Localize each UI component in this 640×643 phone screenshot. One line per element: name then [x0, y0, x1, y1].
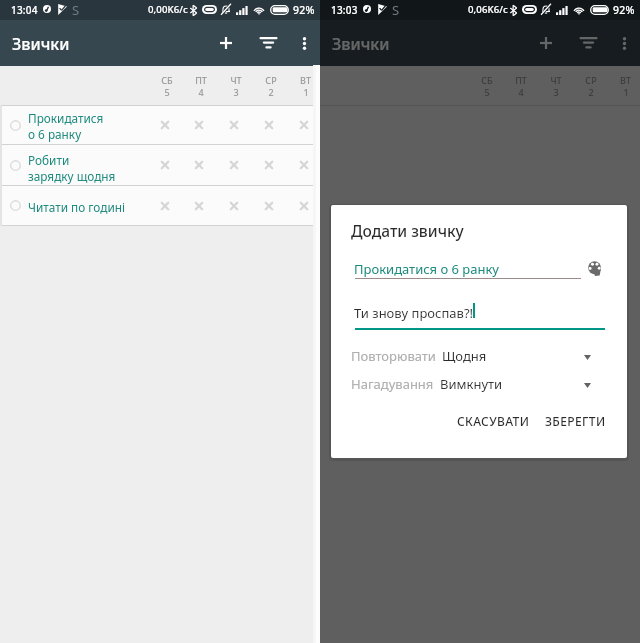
- staticText: 4: [198, 86, 204, 98]
- staticText: Нагадування: [351, 375, 434, 393]
- button[interactable]: Toggle СБ: [148, 145, 182, 185]
- button[interactable]: Toggle ЧТ: [216, 145, 251, 185]
- button[interactable]: Повторювати: [351, 344, 607, 368]
- staticText: 0,06K6/c: [468, 3, 508, 16]
- staticText: 92%: [613, 3, 635, 17]
- staticText: Додати звичку: [351, 220, 464, 241]
- staticText: СБ: [161, 74, 173, 86]
- staticText: 1: [623, 86, 629, 98]
- staticText: ЗБЕРЕГТИ: [545, 413, 606, 429]
- staticText: Ти знову проспав?!: [354, 304, 474, 322]
- staticText: Вимкнути: [440, 375, 503, 393]
- button[interactable]: Toggle СБ: [148, 106, 182, 144]
- staticText: 13:03: [331, 3, 358, 17]
- button[interactable]: More options: [287, 20, 321, 66]
- staticText: Прокидатися: [28, 110, 104, 126]
- staticText: ВТ: [620, 74, 631, 86]
- staticText: ЧТ: [230, 74, 242, 86]
- button[interactable]: Toggle ПТ: [182, 186, 216, 225]
- staticText: 92%: [293, 3, 315, 17]
- staticText: СКАСУВАТИ: [457, 413, 530, 429]
- button[interactable]: Add habit: [206, 20, 246, 66]
- staticText: ПТ: [515, 74, 527, 86]
- staticText: 5: [164, 86, 170, 98]
- staticText: Читати по годині: [28, 199, 126, 215]
- staticText: 3: [553, 86, 559, 98]
- button[interactable]: Toggle ПТ: [182, 106, 216, 144]
- staticText: 1: [303, 86, 309, 98]
- button[interactable]: Toggle ВТ: [286, 145, 321, 185]
- button[interactable]: Toggle ЧТ: [216, 186, 251, 225]
- staticText: 0,00K6/c: [148, 3, 188, 16]
- staticText: ЧТ: [550, 74, 562, 86]
- button[interactable]: Toggle ВТ: [286, 186, 321, 225]
- button[interactable]: ЗБЕРЕГТИ: [540, 406, 611, 436]
- staticText: Звички: [12, 33, 70, 55]
- button[interactable]: Toggle ПТ: [182, 145, 216, 185]
- button[interactable]: Add habit: [526, 20, 566, 66]
- button[interactable]: Toggle СР: [251, 106, 286, 144]
- staticText: 4: [518, 86, 524, 98]
- staticText: ВТ: [300, 74, 311, 86]
- button[interactable]: Filter: [248, 20, 288, 66]
- staticText: Щодня: [442, 347, 487, 365]
- staticText: СР: [265, 74, 277, 86]
- staticText: о 6 ранку: [28, 126, 82, 142]
- staticText: S: [392, 1, 400, 19]
- button[interactable]: Toggle ВТ: [286, 106, 321, 144]
- button[interactable]: Toggle ЧТ: [216, 106, 251, 144]
- staticText: 2: [588, 86, 594, 98]
- staticText: зарядку щодня: [28, 168, 116, 184]
- staticText: 2: [268, 86, 274, 98]
- staticText: Звички: [332, 33, 390, 55]
- staticText: 13:04: [11, 3, 38, 17]
- staticText: Робити: [28, 152, 70, 168]
- staticText: ПТ: [195, 74, 207, 86]
- button[interactable]: Toggle СР: [251, 186, 286, 225]
- button[interactable]: More options: [607, 20, 640, 66]
- staticText: 3: [233, 86, 239, 98]
- staticText: Прокидатися о 6 ранку: [354, 260, 499, 278]
- button[interactable]: Filter: [568, 20, 608, 66]
- button[interactable]: Toggle СР: [251, 145, 286, 185]
- button[interactable]: СКАСУВАТИ: [451, 406, 535, 436]
- staticText: S: [72, 1, 80, 19]
- button[interactable]: Choose colour: [582, 255, 608, 281]
- staticText: СР: [585, 74, 597, 86]
- staticText: 5: [484, 86, 490, 98]
- staticText: СБ: [481, 74, 493, 86]
- button[interactable]: Toggle СБ: [148, 186, 182, 225]
- button[interactable]: Нагадування: [351, 372, 607, 396]
- staticText: Повторювати: [351, 347, 436, 365]
